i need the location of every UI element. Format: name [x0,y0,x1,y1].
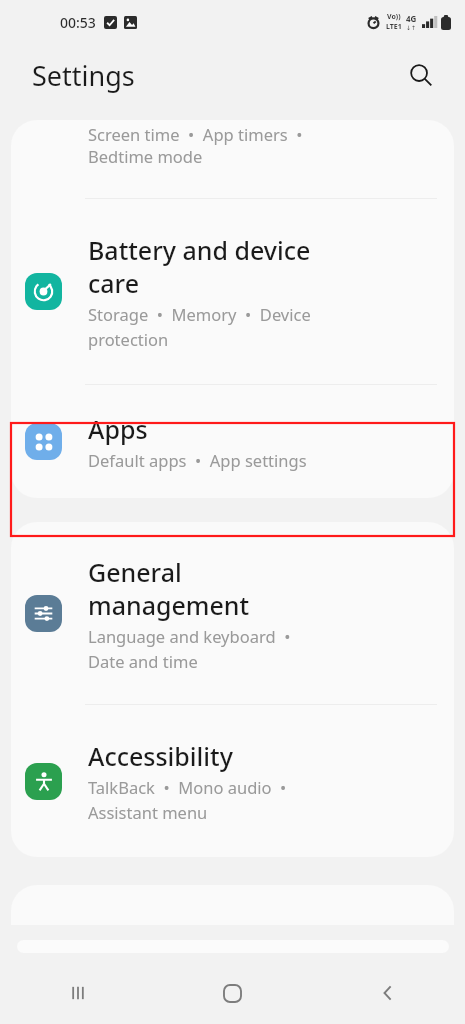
staticText: 4G [406,13,417,24]
button[interactable]: Screen time • App timers • [11,120,454,198]
staticText: Settings [32,57,135,94]
staticText: Language and keyboard • Date and time [88,625,291,672]
staticText: Bedtime mode [88,145,203,167]
staticText: Default apps • App settings [88,449,307,471]
staticText: Vo)) [387,12,401,22]
staticText: ↓↑ [406,24,417,31]
staticText: Battery and device care [88,233,311,300]
button[interactable]: Search [399,53,443,97]
button[interactable]: Accessibility [11,705,454,857]
staticText: TalkBack • Mono audio • Assistant menu [88,776,287,823]
button[interactable]: Battery and device care [11,199,454,384]
button[interactable]: Recents [0,962,155,1024]
button[interactable]: General management [11,522,454,704]
staticText: LTE1 [386,22,402,32]
staticText: General management [88,555,250,622]
staticText: Apps [88,412,148,446]
staticText: Screen time • App timers • [88,123,303,145]
button[interactable]: Home [155,962,310,1024]
staticText: 00:53 [60,13,96,32]
button[interactable]: Apps [11,385,454,498]
staticText: Accessibility [88,739,233,773]
button[interactable]: Back [310,962,465,1024]
staticText: Storage • Memory • Device protection [88,303,311,350]
